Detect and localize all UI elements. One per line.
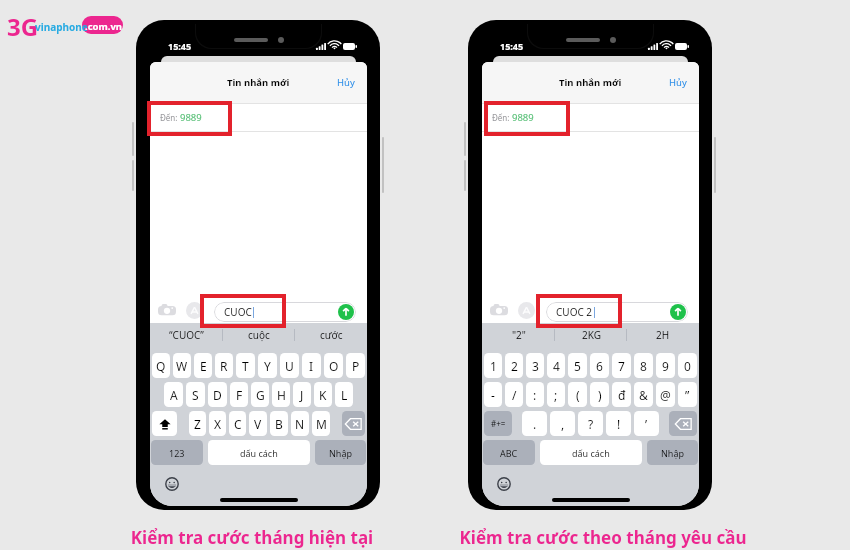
button[interactable]: ABC — [483, 440, 535, 465]
button[interactable]: T — [236, 353, 255, 378]
button[interactable]: - — [484, 382, 502, 407]
button[interactable]: A — [164, 382, 183, 407]
staticText: 6 — [596, 358, 603, 374]
button[interactable]: cước — [295, 323, 367, 347]
staticText: 0 — [684, 358, 691, 374]
staticText: Q — [156, 358, 166, 374]
button[interactable]: 3 — [526, 353, 544, 378]
button[interactable]: Backspace — [342, 411, 365, 436]
button[interactable]: 123 — [151, 440, 203, 465]
button[interactable]: 6 — [590, 353, 609, 378]
staticText: "2" — [512, 328, 526, 342]
button[interactable]: X — [209, 411, 226, 436]
button[interactable]: ? — [578, 411, 603, 436]
button[interactable]: L — [335, 382, 353, 407]
button[interactable]: dấu cách — [208, 440, 310, 465]
button[interactable]: ” — [678, 382, 697, 407]
button[interactable]: CUOC 2 — [546, 302, 688, 322]
button[interactable]: K — [314, 382, 332, 407]
button[interactable]: App Store — [518, 302, 535, 319]
button[interactable]: Z — [189, 411, 206, 436]
staticText: #+= — [491, 418, 506, 429]
button[interactable]: “CUOC” — [150, 323, 223, 347]
button[interactable]: H — [272, 382, 290, 407]
button[interactable]: Hủy — [325, 68, 367, 97]
button[interactable]: Nhập — [647, 440, 698, 465]
button[interactable]: Send — [338, 304, 354, 320]
staticText: Tin nhắn mới — [227, 76, 290, 89]
button[interactable]: ) — [590, 382, 609, 407]
button[interactable]: I — [302, 353, 321, 378]
button[interactable]: B — [270, 411, 288, 436]
button[interactable]: 2 — [505, 353, 523, 378]
button[interactable]: S — [186, 382, 205, 407]
button[interactable]: Đến: — [482, 103, 699, 132]
button[interactable]: J — [293, 382, 311, 407]
button[interactable]: 1 — [484, 353, 502, 378]
button[interactable]: & — [634, 382, 653, 407]
button[interactable]: Camera — [158, 303, 176, 318]
button[interactable]: : — [526, 382, 544, 407]
staticText: ; — [554, 387, 558, 403]
staticText: E — [200, 358, 207, 374]
staticText: Kiểm tra cước tháng hiện tại — [82, 526, 422, 549]
button[interactable]: Emoji — [165, 477, 179, 491]
button[interactable]: đ — [612, 382, 631, 407]
button[interactable]: N — [291, 411, 309, 436]
button[interactable]: V — [249, 411, 267, 436]
button[interactable]: ; — [547, 382, 565, 407]
button[interactable]: 4 — [547, 353, 565, 378]
button[interactable]: M — [312, 411, 330, 436]
staticText: 15:45 — [168, 40, 192, 52]
button[interactable]: 2KG — [555, 323, 627, 347]
button[interactable]: Hủy — [657, 68, 699, 97]
button[interactable]: 2H — [627, 323, 699, 347]
button[interactable]: R — [215, 353, 233, 378]
button[interactable]: Emoji — [497, 477, 511, 491]
button[interactable]: O — [324, 353, 343, 378]
button[interactable]: Backspace — [669, 411, 697, 436]
button[interactable]: G — [251, 382, 269, 407]
button[interactable]: 5 — [568, 353, 587, 378]
button[interactable]: Nhập — [315, 440, 366, 465]
button[interactable]: #+= — [484, 411, 512, 436]
staticText: R — [220, 358, 228, 374]
button[interactable]: 0 — [678, 353, 697, 378]
button[interactable]: dấu cách — [540, 440, 642, 465]
button[interactable]: E — [194, 353, 212, 378]
staticText: 9 — [662, 358, 669, 374]
button[interactable]: D — [208, 382, 227, 407]
button[interactable]: , — [550, 411, 575, 436]
button[interactable]: / — [505, 382, 523, 407]
button[interactable]: Shift — [152, 411, 177, 436]
button[interactable]: CUOC — [214, 302, 356, 322]
button[interactable]: W — [173, 353, 191, 378]
staticText: ’ — [645, 416, 648, 432]
button[interactable]: cuộc — [223, 323, 295, 347]
staticText: cước — [320, 328, 343, 342]
staticText: & — [639, 387, 648, 403]
button[interactable]: Camera — [490, 303, 508, 318]
button[interactable]: ! — [606, 411, 631, 436]
button[interactable]: ( — [568, 382, 587, 407]
staticText: , — [561, 416, 565, 432]
button[interactable]: C — [229, 411, 246, 436]
staticText: cuộc — [248, 328, 270, 342]
button[interactable]: . — [522, 411, 547, 436]
button[interactable]: 7 — [612, 353, 631, 378]
button[interactable]: @ — [656, 382, 675, 407]
button[interactable]: U — [280, 353, 299, 378]
button[interactable]: Y — [258, 353, 277, 378]
staticText: O — [329, 358, 339, 374]
button[interactable]: 8 — [634, 353, 653, 378]
button[interactable]: "2" — [482, 323, 555, 347]
button[interactable]: Q — [152, 353, 170, 378]
button[interactable]: P — [346, 353, 365, 378]
button[interactable]: ’ — [634, 411, 659, 436]
button[interactable]: Đến: — [150, 103, 367, 132]
button[interactable]: 9 — [656, 353, 675, 378]
staticText: 8 — [640, 358, 647, 374]
button[interactable]: App Store — [186, 302, 203, 319]
button[interactable]: F — [230, 382, 248, 407]
button[interactable]: Send — [670, 304, 686, 320]
